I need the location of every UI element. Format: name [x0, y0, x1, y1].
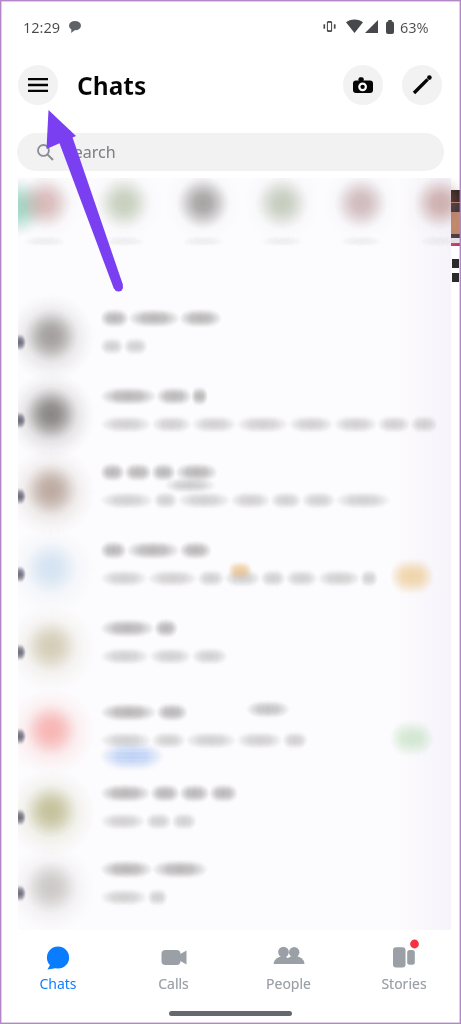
staticText: People: [266, 974, 311, 992]
button[interactable]: New message: [402, 65, 442, 105]
button[interactable]: People: [231, 930, 346, 992]
staticText: Search: [65, 141, 116, 163]
staticText: Chats: [77, 69, 147, 102]
button[interactable]: Calls: [116, 930, 231, 992]
button[interactable]: Search: [17, 133, 444, 171]
button[interactable]: Camera: [343, 65, 383, 105]
staticText: Stories: [381, 974, 427, 992]
staticText: Calls: [158, 974, 189, 992]
staticText: 12:29: [23, 17, 61, 37]
button[interactable]: Menu: [18, 65, 58, 105]
staticText: Chats: [39, 974, 77, 992]
button[interactable]: Chats: [0, 930, 116, 992]
staticText: 63%: [400, 17, 429, 37]
button[interactable]: Stories: [346, 930, 461, 992]
